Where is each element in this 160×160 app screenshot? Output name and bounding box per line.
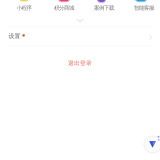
button[interactable]: 智能客服 [124, 0, 160, 14]
staticText: 退出登录 [68, 59, 92, 67]
button[interactable]: 品牌标识 [144, 133, 160, 155]
button[interactable]: 积分商城 [44, 0, 84, 14]
staticText: 设置 [8, 32, 20, 40]
button[interactable]: 退出登录 [0, 56, 160, 70]
button[interactable]: 案例下载 [84, 0, 124, 14]
button[interactable]: 展开更多 [68, 14, 92, 26]
staticText: 小程序 [16, 5, 31, 11]
button[interactable]: 小程序 [4, 0, 44, 14]
button[interactable]: 设置 [0, 26, 160, 45]
staticText: 积分商城 [54, 5, 74, 11]
staticText: 智能客服 [134, 5, 154, 11]
staticText: 案例下载 [94, 5, 114, 11]
